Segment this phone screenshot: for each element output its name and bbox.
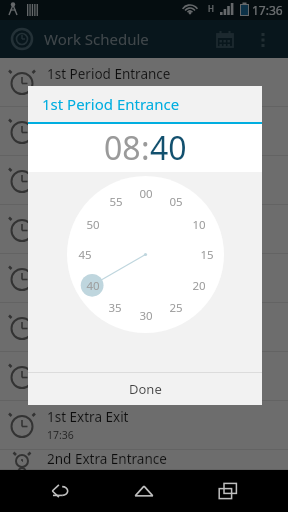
- staticText: 1st Period Entrance: [42, 94, 180, 114]
- button[interactable]: Home: [120, 470, 168, 512]
- button[interactable]: 1st Period Exit: [0, 107, 288, 156]
- staticText: 45: [78, 247, 92, 263]
- staticText: 17:36: [47, 232, 74, 246]
- button[interactable]: More options: [244, 20, 282, 58]
- staticText: 17:36: [252, 2, 283, 18]
- staticText: 3rd Period Exit: [47, 310, 140, 328]
- staticText: 3rd Period Entrance: [47, 261, 173, 279]
- staticText: Done: [129, 380, 162, 398]
- button[interactable]: 1st Extra Exit: [0, 401, 288, 450]
- button[interactable]: Calendar: [206, 20, 244, 58]
- button[interactable]: 3rd Period Entrance: [0, 254, 288, 303]
- button[interactable]: Back: [36, 470, 84, 512]
- staticText: 17:36: [47, 428, 74, 442]
- staticText: 25: [169, 300, 183, 316]
- staticText: 1st Period Entrance: [47, 65, 171, 83]
- button[interactable]: 1st Extra Entrance: [0, 352, 288, 401]
- staticText: H: [208, 3, 214, 14]
- staticText: Work Schedule: [44, 29, 149, 49]
- button[interactable]: 08: [104, 126, 141, 170]
- staticText: 00: [139, 186, 153, 202]
- button[interactable]: Done: [28, 373, 262, 405]
- staticText: 2nd Period Exit: [47, 212, 143, 230]
- staticText: 2nd Extra Entrance: [47, 450, 167, 468]
- staticText: 1st Period Exit: [47, 114, 138, 132]
- staticText: 40: [86, 278, 100, 294]
- staticText: :: [141, 126, 150, 170]
- button[interactable]: 2nd Period Entrance: [0, 156, 288, 205]
- staticText: 20: [192, 278, 206, 294]
- staticText: 1st Extra Exit: [47, 408, 129, 426]
- button[interactable]: 2nd Extra Entrance: [0, 450, 288, 470]
- staticText: 05: [169, 194, 183, 210]
- staticText: 30: [139, 308, 153, 324]
- button[interactable]: Recent apps: [204, 470, 252, 512]
- staticText: 17:36: [47, 85, 74, 99]
- staticText: 55: [109, 194, 123, 210]
- staticText: 2nd Period Entrance: [47, 163, 176, 181]
- button[interactable]: 3rd Period Exit: [0, 303, 288, 352]
- button[interactable]: 40: [150, 126, 187, 170]
- staticText: 15: [200, 247, 214, 263]
- staticText: 50: [86, 217, 100, 233]
- button[interactable]: 1st Period Entrance: [0, 58, 288, 107]
- staticText: 1st Extra Entrance: [47, 359, 162, 377]
- staticText: 10: [192, 217, 206, 233]
- button[interactable]: 2nd Period Exit: [0, 205, 288, 254]
- staticText: 35: [108, 300, 122, 316]
